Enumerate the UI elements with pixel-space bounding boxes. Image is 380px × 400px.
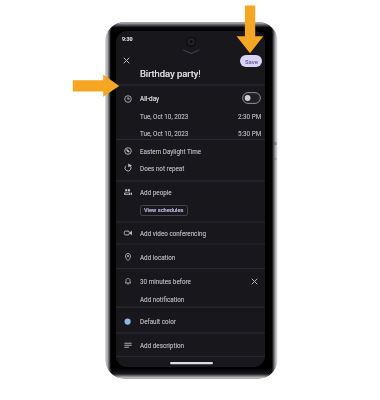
button[interactable]: Save: [240, 55, 262, 67]
staticText: Add description: [140, 342, 185, 349]
staticText: Default color: [140, 318, 176, 325]
staticText: 5:30 PM: [238, 130, 262, 137]
staticText: Eastern Daylight Time: [140, 148, 202, 155]
staticText: Add video conferencing: [140, 230, 206, 237]
staticText: 30 minutes before: [140, 278, 191, 285]
button[interactable]: All-day toggle: [242, 92, 261, 104]
button[interactable]: Remove notification: [246, 273, 263, 290]
button[interactable]: [116, 312, 265, 330]
staticText: All-day: [140, 95, 160, 103]
staticText: Add people: [140, 189, 172, 196]
staticText: View schedules: [144, 207, 184, 214]
staticText: Tue, Oct 10, 2023: [140, 113, 189, 120]
staticText: Add notification: [140, 296, 185, 303]
staticText: 9:30: [122, 36, 133, 42]
staticText: Add location: [140, 254, 176, 261]
button[interactable]: Close: [117, 51, 135, 69]
staticText: Birthday party!: [140, 68, 201, 79]
staticText: Save: [245, 58, 258, 65]
staticText: Tue, Oct 10, 2023: [140, 130, 189, 137]
staticText: 2:30 PM: [238, 113, 262, 120]
staticText: Does not repeat: [140, 165, 185, 172]
button[interactable]: View schedules: [140, 205, 188, 216]
